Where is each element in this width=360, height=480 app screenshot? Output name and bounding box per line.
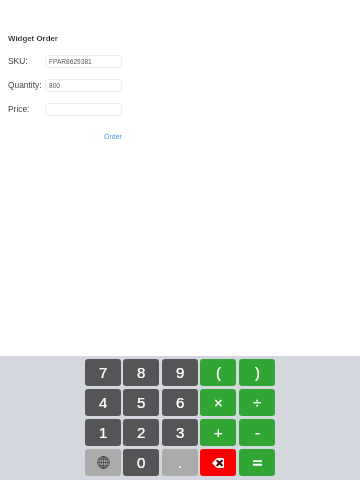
staticText: 4: [99, 394, 108, 411]
staticText: (: [216, 364, 221, 381]
button[interactable]: ÷: [239, 389, 275, 416]
staticText: 800: [49, 82, 61, 89]
button[interactable]: Change keyboard: [85, 449, 121, 476]
button[interactable]: 4: [85, 389, 121, 416]
staticText: 3: [176, 424, 185, 441]
button[interactable]: Backspace: [200, 449, 236, 476]
button[interactable]: Order: [100, 129, 126, 145]
staticText: Widget Order: [8, 34, 58, 43]
button[interactable]: ×: [200, 389, 236, 416]
staticText: 5: [137, 394, 146, 411]
button[interactable]: Equals: [239, 449, 275, 476]
staticText: 2: [137, 424, 146, 441]
staticText: -: [255, 424, 260, 441]
staticText: Order: [104, 133, 122, 141]
button[interactable]: +: [200, 419, 236, 446]
button[interactable]: Decimal point: [162, 449, 198, 476]
button[interactable]: 800: [45, 79, 122, 92]
staticText: 9: [176, 364, 185, 381]
button[interactable]: ): [239, 359, 275, 386]
button[interactable]: 0: [123, 449, 159, 476]
button[interactable]: [45, 103, 122, 116]
staticText: ): [255, 364, 260, 381]
button[interactable]: (: [200, 359, 236, 386]
staticText: SKU:: [8, 56, 28, 65]
button[interactable]: 3: [162, 419, 198, 446]
button[interactable]: 6: [162, 389, 198, 416]
button[interactable]: 8: [123, 359, 159, 386]
staticText: +: [214, 424, 223, 441]
staticText: FPAR8629381: [49, 58, 92, 65]
staticText: .: [178, 454, 183, 471]
staticText: Quantity:: [8, 80, 42, 89]
staticText: ×: [214, 394, 223, 411]
staticText: 6: [176, 394, 185, 411]
staticText: ÷: [253, 394, 262, 411]
staticText: 7: [99, 364, 108, 381]
staticText: Price:: [8, 104, 30, 113]
staticText: 8: [137, 364, 146, 381]
button[interactable]: 2: [123, 419, 159, 446]
staticText: 0: [137, 454, 146, 471]
button[interactable]: 7: [85, 359, 121, 386]
button[interactable]: 9: [162, 359, 198, 386]
button[interactable]: 5: [123, 389, 159, 416]
button[interactable]: FPAR8629381: [45, 55, 122, 68]
button[interactable]: 1: [85, 419, 121, 446]
button[interactable]: -: [239, 419, 275, 446]
staticText: 1: [99, 424, 108, 441]
